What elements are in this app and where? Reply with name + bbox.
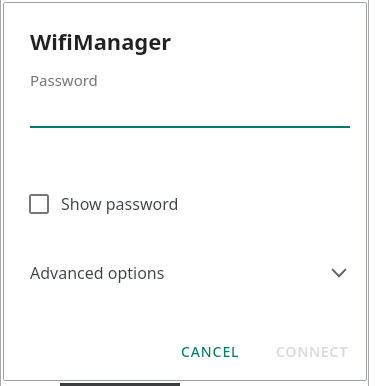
other: Expand advanced options	[329, 263, 349, 283]
staticText: Advanced options	[30, 262, 165, 284]
button[interactable]: CONNECT	[266, 334, 359, 369]
staticText: CONNECT	[276, 342, 349, 361]
button[interactable]: CANCEL	[171, 334, 250, 369]
staticText: Password	[30, 70, 98, 90]
staticText: WifiManager	[30, 26, 172, 56]
button[interactable]: Show password	[29, 188, 179, 220]
button[interactable]: Advanced options	[3, 256, 367, 290]
staticText: CANCEL	[181, 342, 240, 361]
staticText: Show password	[61, 193, 179, 215]
